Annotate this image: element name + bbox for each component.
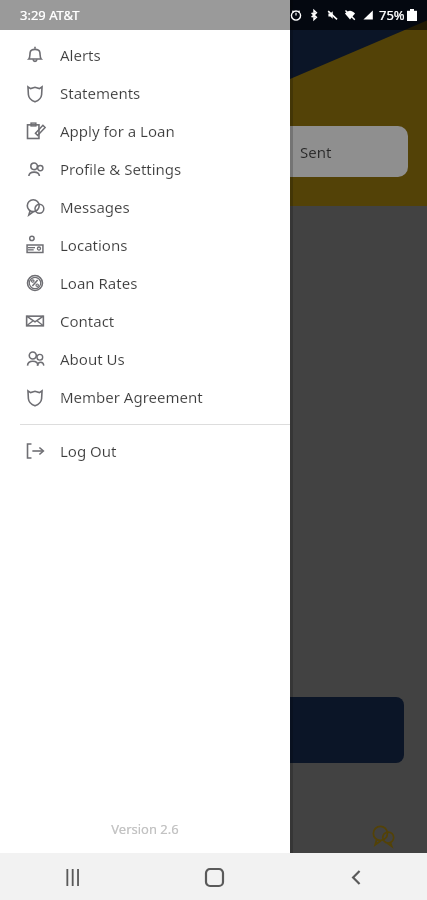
button[interactable]: Contact [0,302,290,340]
button[interactable]: Statements [0,74,290,112]
staticText: Loan Rates [60,273,138,293]
button[interactable]: Apply for a Loan [0,112,290,150]
button[interactable]: Messages [340,822,426,869]
button[interactable]: Sent [150,126,408,177]
staticText: Locations [60,235,128,255]
button[interactable]: Messages [0,188,290,226]
button[interactable]: Recents [50,855,94,899]
staticText: Member Agreement [60,387,203,407]
staticText: Sent [300,142,332,162]
staticText: About Us [60,349,125,369]
staticText: Statements [60,83,141,103]
button[interactable] [150,697,404,763]
staticText: Messages [60,197,130,217]
button[interactable]: Loan Rates [0,264,290,302]
button[interactable]: Alerts [0,36,290,74]
staticText: Contact [60,311,115,331]
button[interactable]: Locations [0,226,290,264]
button[interactable]: Back [334,855,378,899]
staticText: Apply for a Loan [60,121,175,141]
staticText: Log Out [60,441,117,461]
button[interactable]: Pay [232,822,318,869]
button[interactable]: Home [192,855,236,899]
button[interactable]: Log Out [0,432,290,470]
staticText: Version 2.6 [111,820,179,838]
staticText: Alerts [60,45,101,65]
button[interactable]: About Us [0,340,290,378]
staticText: 3:29 AT&T [20,6,80,24]
staticText: 75% [379,6,405,24]
button[interactable]: Member Agreement [0,378,290,416]
staticText: Profile & Settings [60,159,182,179]
button[interactable]: Profile & Settings [0,150,290,188]
